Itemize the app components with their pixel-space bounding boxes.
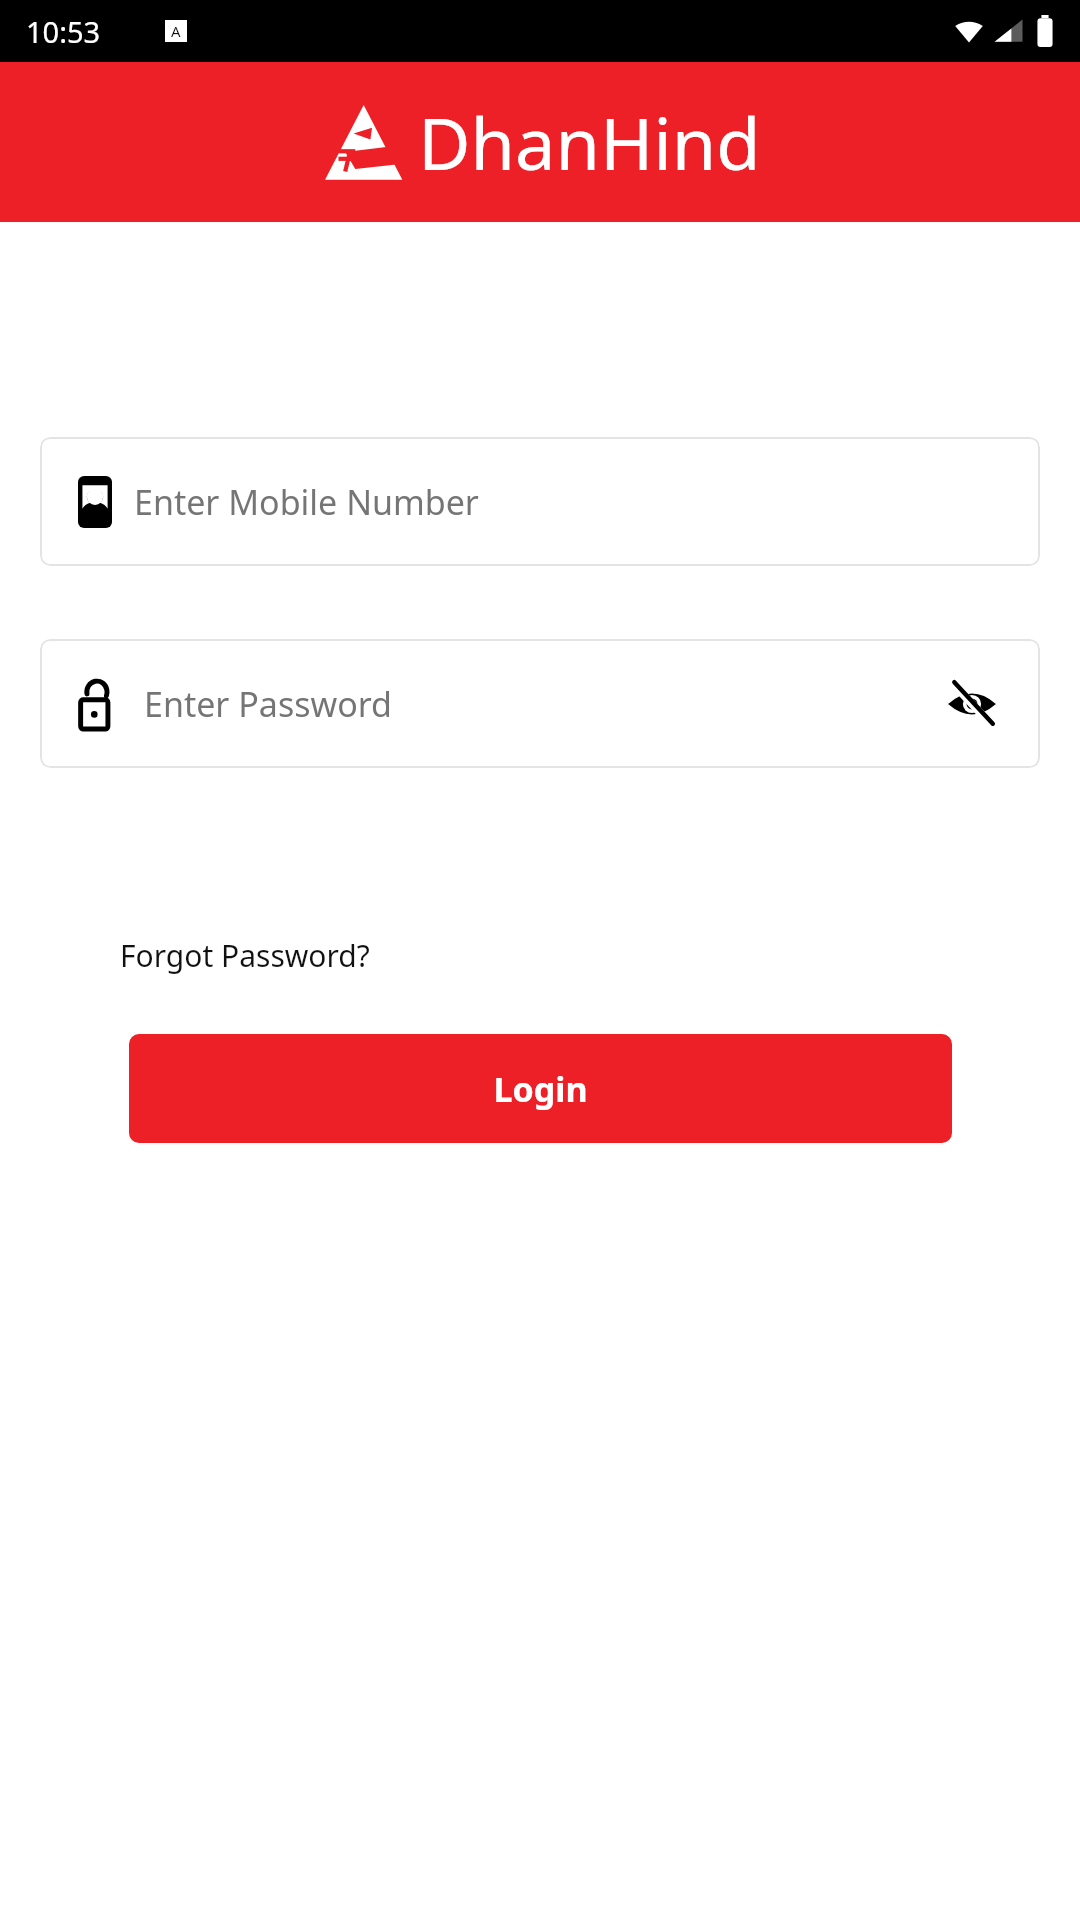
staticText: 10:53 [26, 12, 101, 51]
button[interactable]: Enter Mobile Number [40, 437, 1040, 566]
button[interactable]: Show password [942, 674, 1002, 734]
button[interactable]: Enter Password [40, 639, 1040, 768]
staticText: Forgot Password? [120, 935, 370, 976]
staticText: A [171, 21, 181, 41]
staticText: Enter Mobile Number [134, 479, 1002, 525]
button[interactable]: Login [129, 1034, 952, 1143]
staticText: Enter Password [144, 681, 942, 727]
staticText: Login [493, 1066, 588, 1112]
staticText: DhanHind [418, 93, 761, 191]
button[interactable]: Forgot Password? [120, 935, 370, 976]
